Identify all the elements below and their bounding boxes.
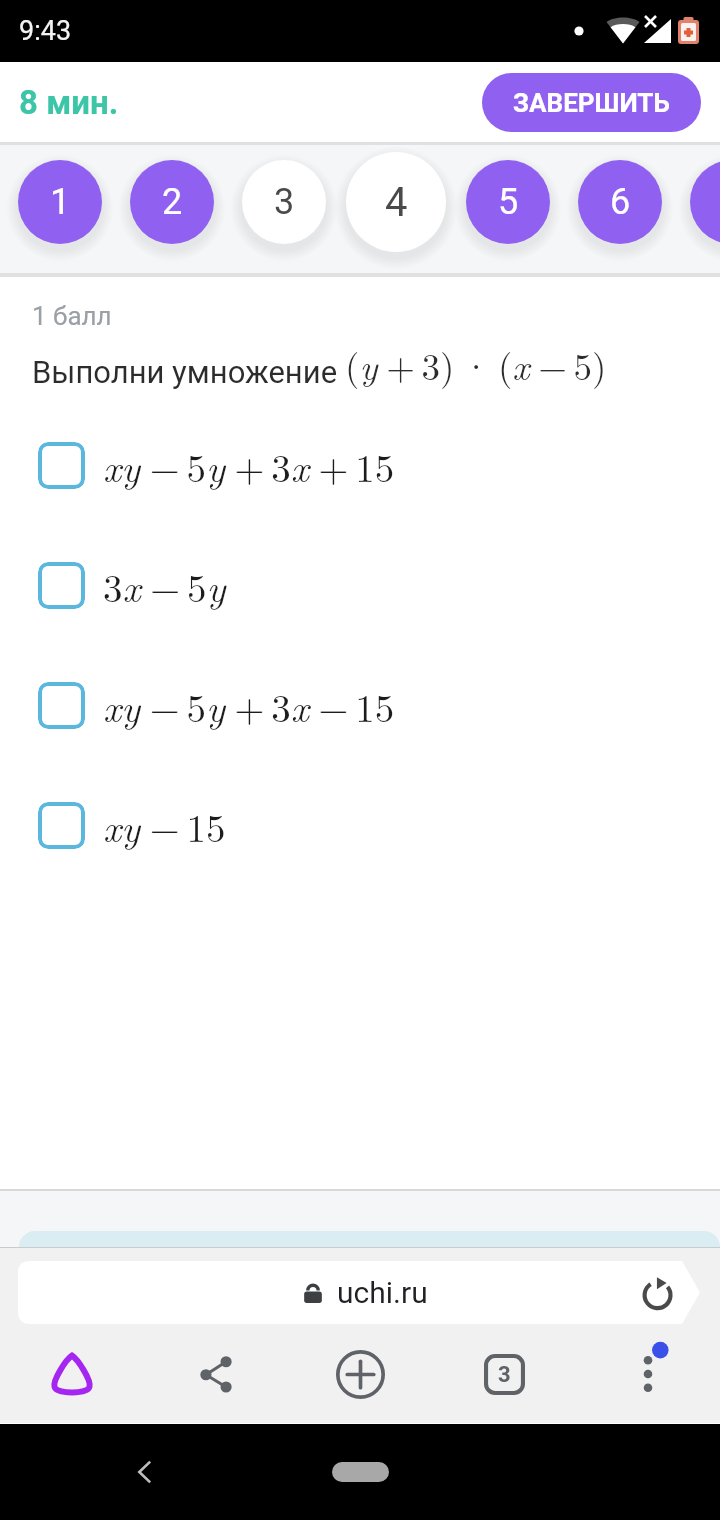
button[interactable]: Switch tabs (3 open) (468, 1338, 540, 1410)
button[interactable]: 1 (18, 160, 102, 244)
staticText: 8 мин. (19, 83, 119, 122)
staticText: xy − 5y + 3x + 15 (103, 438, 395, 493)
button[interactable]: xy − 15 (0, 765, 720, 885)
button[interactable]: 5 (466, 160, 550, 244)
button[interactable]: 7 (690, 160, 720, 244)
button[interactable]: Home (332, 1462, 389, 1482)
staticText: 1 (50, 181, 71, 223)
staticText: xy − 15 (103, 798, 226, 853)
button[interactable]: Home (36, 1338, 108, 1410)
button[interactable]: uchi.ru (18, 1261, 700, 1324)
button[interactable]: Share (180, 1338, 252, 1410)
staticText: 1 балл (32, 301, 112, 331)
staticText: 9:43 (19, 15, 72, 47)
button[interactable]: 6 (578, 160, 662, 244)
button[interactable]: New tab (324, 1338, 396, 1410)
button[interactable]: xy − 5y + 3x + 15 (0, 405, 720, 525)
staticText: 6 (610, 181, 631, 223)
button[interactable]: xy − 5y + 3x − 15 (0, 645, 720, 765)
button[interactable]: Reload page (637, 1271, 681, 1315)
button[interactable]: 2 (130, 160, 214, 244)
button[interactable]: More options (612, 1338, 684, 1410)
staticText: xy − 5y + 3x − 15 (103, 678, 395, 733)
button[interactable]: 3 (242, 160, 326, 244)
staticText: uchi.ru (337, 1275, 428, 1310)
staticText: ЗАВЕРШИТЬ (513, 88, 670, 118)
button[interactable]: Back (120, 1447, 170, 1497)
staticText: 3 (498, 1362, 511, 1388)
staticText: Выполни умножение (32, 354, 345, 390)
staticText: 5 (498, 181, 519, 223)
button[interactable]: ЗАВЕРШИТЬ (482, 73, 701, 132)
staticText: 4 (385, 179, 408, 226)
button[interactable]: 3x − 5y (0, 525, 720, 645)
staticText: (y + 3) · (x − 5) (345, 338, 607, 390)
staticText: 3x − 5y (103, 558, 226, 613)
staticText: 3 (274, 181, 295, 223)
button[interactable]: 4 (346, 152, 446, 252)
staticText: 2 (162, 181, 183, 223)
